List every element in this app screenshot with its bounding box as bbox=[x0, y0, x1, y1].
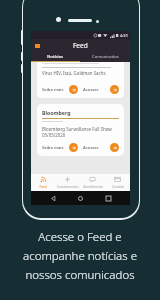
staticText: Acessar bbox=[83, 145, 99, 151]
button[interactable]: Saiba mais bbox=[42, 84, 78, 95]
button[interactable]: Home bbox=[75, 193, 86, 204]
staticText: Bloomberg Surveillance Full Show bbox=[42, 126, 112, 132]
button[interactable]: Atendimento bbox=[80, 174, 105, 191]
staticText: Saiba mais bbox=[42, 145, 64, 151]
staticText: Bloomberg bbox=[42, 109, 71, 116]
button[interactable]: Contato bbox=[105, 174, 130, 191]
button[interactable]: Saiba mais bbox=[42, 142, 78, 153]
staticText: acompanhe notícias e bbox=[23, 248, 137, 264]
staticText: Comunicados bbox=[92, 54, 119, 60]
button[interactable]: Acessar bbox=[83, 84, 119, 95]
staticText: Acesse o Feed e bbox=[38, 229, 122, 245]
button[interactable]: Menu bbox=[34, 42, 41, 49]
staticText: nossos comunicados bbox=[25, 267, 135, 283]
button[interactable]: Back bbox=[48, 193, 59, 204]
staticText: Saiba mais bbox=[42, 87, 64, 93]
button[interactable]: Feed bbox=[31, 174, 55, 191]
staticText: Atendimento bbox=[83, 185, 103, 189]
staticText: Contato bbox=[112, 185, 124, 189]
button[interactable]: Investimentos bbox=[55, 174, 80, 191]
button[interactable]: Vírus HIV, Itaú, Goldman Sachs bbox=[37, 62, 124, 98]
button[interactable]: Comunicados bbox=[80, 52, 130, 61]
staticText: Feed bbox=[39, 185, 47, 189]
staticText: Investimentos bbox=[57, 185, 79, 189]
button[interactable]: Notícias bbox=[31, 52, 80, 61]
staticText: 05/05/2020 bbox=[42, 132, 66, 138]
staticText: 4:31 bbox=[120, 33, 128, 38]
button[interactable]: Recent apps bbox=[103, 193, 114, 204]
staticText: Vírus HIV, Itaú, Goldman Sachs bbox=[42, 70, 106, 76]
button[interactable]: Bloomberg bbox=[37, 104, 124, 156]
staticText: Feed bbox=[73, 41, 88, 50]
staticText: Acessar bbox=[83, 87, 99, 93]
button[interactable]: Acessar bbox=[83, 142, 119, 153]
staticText: Notícias bbox=[47, 54, 64, 60]
